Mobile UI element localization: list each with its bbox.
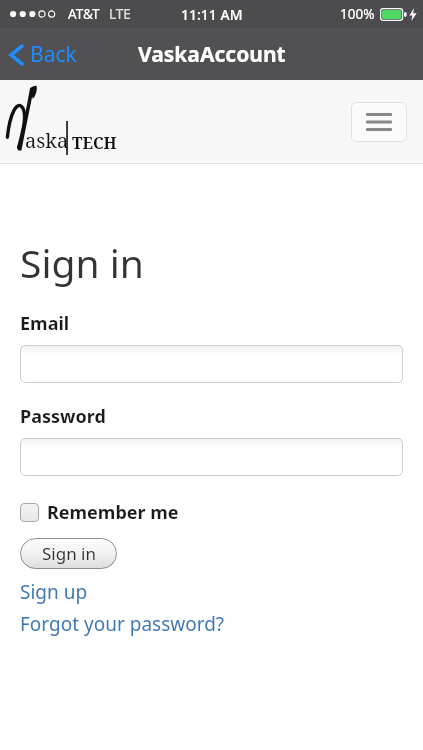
staticText: Remember me <box>47 500 179 525</box>
staticText: Back <box>30 40 77 69</box>
button[interactable]: VaskaTECH home <box>6 84 118 158</box>
staticText: LTE <box>109 5 131 23</box>
staticText: Password <box>20 404 106 429</box>
staticText: 11:11 AM <box>181 5 243 24</box>
staticText: Forgot your password? <box>20 611 225 637</box>
button[interactable]: Text field <box>20 438 403 476</box>
button[interactable]: Sign up <box>20 578 88 606</box>
button[interactable]: Forgot your password? <box>20 610 225 638</box>
staticText: aska <box>25 127 69 154</box>
button[interactable]: Sign in <box>20 538 117 569</box>
staticText: Sign in <box>20 236 144 289</box>
staticText: 100% <box>340 5 375 23</box>
staticText: AT&T <box>68 5 100 23</box>
button[interactable]: Remember me <box>20 498 179 527</box>
button[interactable]: Menu <box>351 102 407 142</box>
staticText: VaskaAccount <box>138 40 286 69</box>
staticText: Email <box>20 311 70 336</box>
button[interactable]: Back <box>0 34 89 75</box>
staticText: Sign in <box>42 542 96 565</box>
staticText: Sign up <box>20 579 88 605</box>
staticText: TECH <box>72 132 117 154</box>
button[interactable]: Text field <box>20 345 403 383</box>
